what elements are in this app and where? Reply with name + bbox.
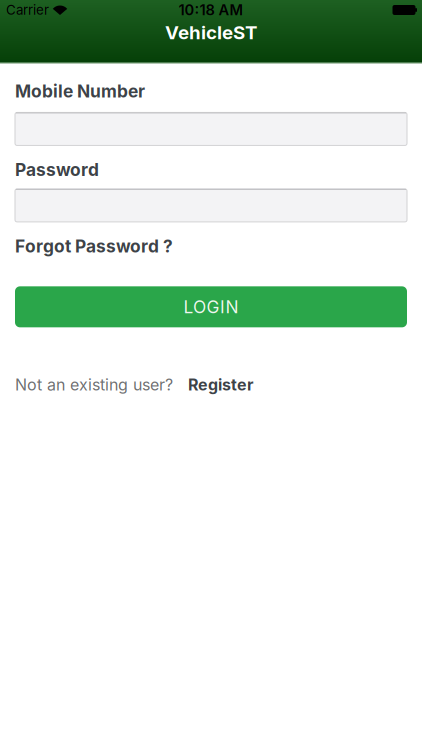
staticText: Password <box>15 159 99 180</box>
button[interactable]: Register <box>188 375 254 394</box>
button[interactable]: Password <box>15 189 407 222</box>
staticText: Register <box>188 375 254 394</box>
staticText: Carrier <box>6 2 49 18</box>
button[interactable]: Mobile Number <box>15 112 407 145</box>
staticText: Not an existing user? <box>15 375 173 394</box>
button[interactable]: Forgot Password ? <box>15 236 173 256</box>
staticText: Mobile Number <box>15 81 145 101</box>
staticText: Forgot Password ? <box>15 236 173 256</box>
staticText: LOGIN <box>183 297 238 317</box>
staticText: VehicleST <box>165 21 257 43</box>
staticText: 10:18 AM <box>178 1 243 19</box>
button[interactable]: LOGIN <box>15 286 407 327</box>
